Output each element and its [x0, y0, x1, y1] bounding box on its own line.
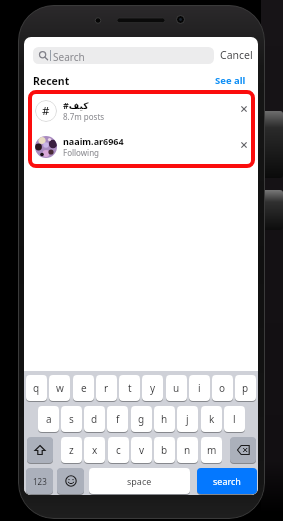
staticText: Cancel [220, 48, 253, 62]
staticText: q [33, 381, 40, 395]
button[interactable]: d [84, 406, 105, 432]
staticText: naaim.ar6964 [63, 135, 124, 147]
staticText: c [116, 443, 121, 457]
button[interactable] [241, 106, 247, 112]
button[interactable]: f [107, 406, 128, 432]
staticText: f [116, 412, 120, 426]
button[interactable]: e [73, 375, 94, 401]
button[interactable]: m [201, 437, 222, 463]
staticText: 123 [33, 476, 47, 487]
button[interactable]: c [108, 437, 129, 463]
staticText: Following [63, 147, 100, 158]
button[interactable] [230, 437, 256, 463]
staticText: u [173, 381, 180, 395]
button[interactable]: x [84, 437, 105, 463]
staticText: Search [53, 50, 85, 64]
staticText: # [42, 103, 50, 119]
button[interactable]: v [131, 437, 152, 463]
button[interactable]: n [177, 437, 198, 463]
button[interactable]: Search [33, 47, 214, 64]
staticText: j [186, 412, 189, 426]
button[interactable]: i [189, 375, 210, 401]
staticText: d [91, 412, 98, 426]
button[interactable]: p [235, 375, 256, 401]
staticText: s [69, 412, 74, 426]
staticText: h [161, 412, 168, 426]
staticText: b [161, 443, 168, 457]
button[interactable]: o [212, 375, 233, 401]
button[interactable]: z [61, 437, 82, 463]
staticText: m [207, 443, 217, 457]
button[interactable]: j [177, 406, 198, 432]
button[interactable]: b [154, 437, 175, 463]
button[interactable]: t [119, 375, 140, 401]
staticText: #كيف [63, 99, 89, 111]
staticText: l [233, 412, 236, 426]
staticText: r [104, 381, 109, 395]
staticText: o [219, 381, 226, 395]
button[interactable]: 123 [26, 468, 53, 494]
staticText: g [138, 412, 145, 426]
staticText: Recent [33, 74, 70, 88]
staticText: search [213, 475, 241, 487]
staticText: space [127, 475, 152, 487]
staticText: z [69, 443, 74, 457]
button[interactable]: w [49, 375, 70, 401]
button[interactable]: s [61, 406, 82, 432]
button[interactable]: # [30, 95, 252, 129]
button[interactable]: naaim.ar6964 [30, 131, 252, 165]
button[interactable]: r [96, 375, 117, 401]
button[interactable]: l [224, 406, 245, 432]
button[interactable] [241, 142, 247, 148]
staticText: n [184, 443, 191, 457]
button[interactable]: u [166, 375, 187, 401]
button[interactable]: Cancel [217, 43, 255, 67]
button[interactable] [27, 437, 53, 463]
staticText: t [128, 381, 132, 395]
staticText: i [198, 381, 201, 395]
staticText: 8.7m posts [63, 111, 105, 122]
button[interactable]: h [154, 406, 175, 432]
button[interactable]: a [38, 406, 59, 432]
button[interactable]: q [26, 375, 47, 401]
button[interactable]: k [201, 406, 222, 432]
staticText: v [139, 443, 145, 457]
staticText: w [56, 381, 64, 395]
staticText: See all [215, 74, 246, 87]
button[interactable]: g [131, 406, 152, 432]
button[interactable]: See all [210, 72, 250, 88]
button[interactable] [57, 468, 84, 494]
staticText: x [92, 443, 98, 457]
staticText: a [46, 412, 52, 426]
staticText: y [150, 381, 156, 395]
button[interactable]: search [197, 468, 257, 494]
button[interactable]: y [142, 375, 163, 401]
staticText: k [209, 412, 215, 426]
button[interactable]: space [89, 468, 190, 494]
staticText: e [81, 381, 87, 395]
staticText: p [242, 381, 249, 395]
